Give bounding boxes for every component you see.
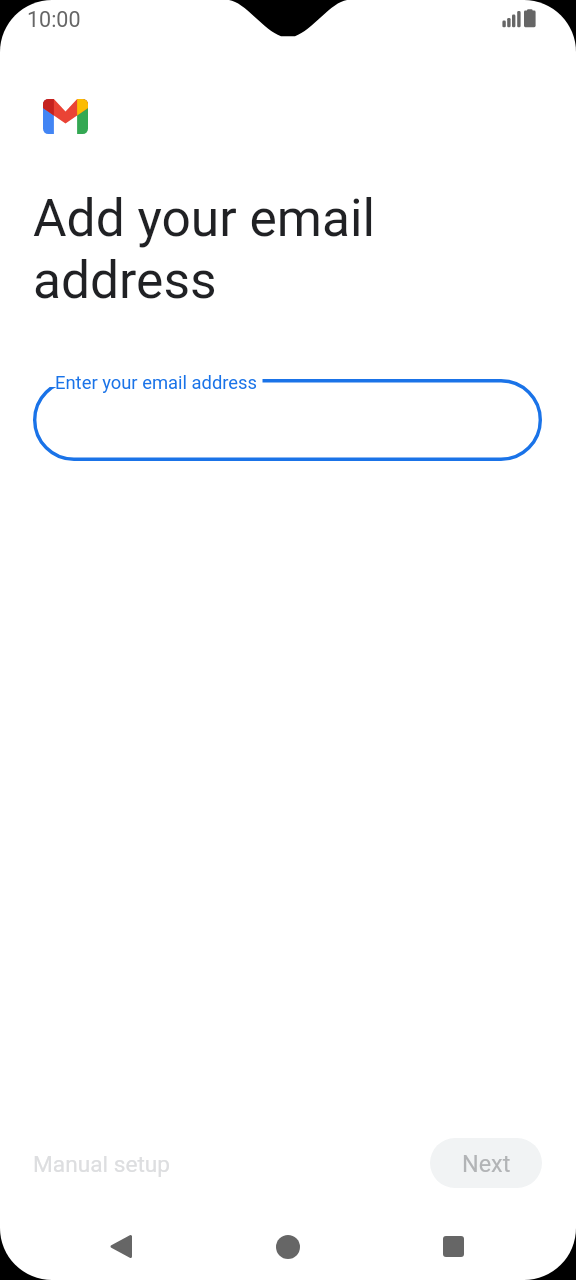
- other: Gmail: [43, 99, 88, 134]
- button[interactable]: Manual setup: [21, 1139, 183, 1190]
- button[interactable]: Recent apps: [420, 1213, 486, 1279]
- button[interactable]: Enter your email address: [33, 379, 542, 461]
- staticText: 10:00: [27, 7, 81, 32]
- button[interactable]: Next: [430, 1138, 542, 1188]
- button[interactable]: Back: [87, 1213, 153, 1279]
- staticText: Enter your email address: [55, 372, 258, 394]
- staticText: Manual setup: [33, 1151, 171, 1178]
- button[interactable]: Home: [255, 1214, 321, 1280]
- staticText: Next: [462, 1150, 511, 1177]
- staticText: Add your email address: [33, 188, 375, 311]
- other: Signal and battery status: [498, 6, 542, 30]
